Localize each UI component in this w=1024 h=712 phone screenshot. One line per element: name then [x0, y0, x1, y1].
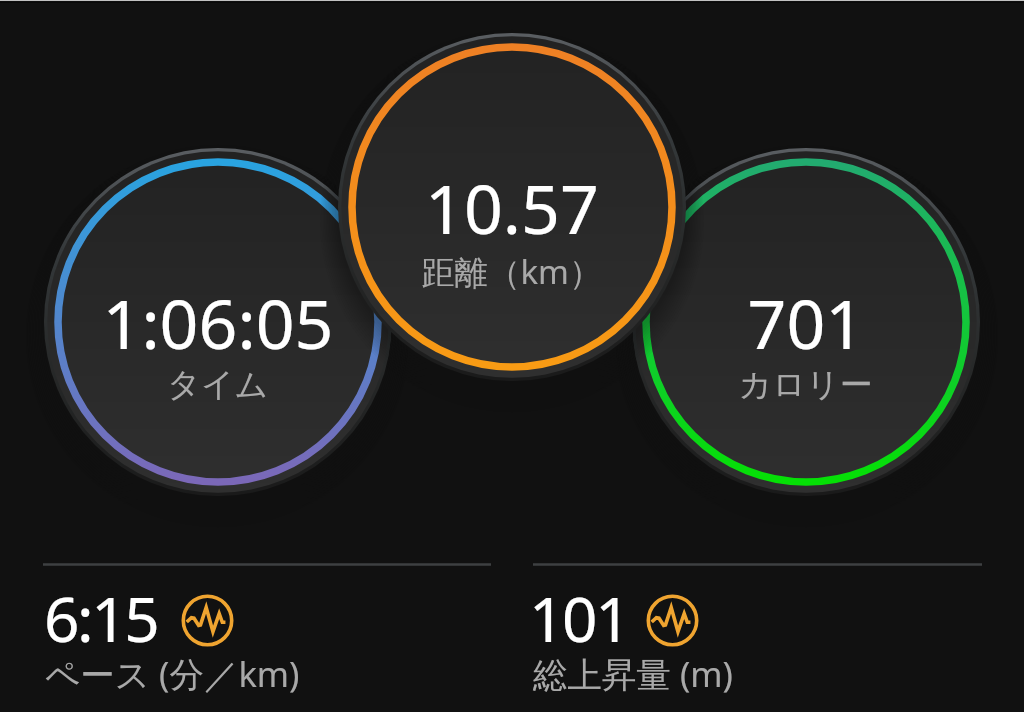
button[interactable]: 距離（km） 10.57 — [338, 33, 686, 381]
button[interactable]: タイム 1:06:05 — [44, 148, 392, 496]
button[interactable]: カロリー 701 — [632, 148, 980, 496]
button[interactable]: 総上昇量 (m) 101 — [509, 575, 979, 700]
button[interactable]: ペース (分／km) 6:15 — [20, 575, 490, 700]
